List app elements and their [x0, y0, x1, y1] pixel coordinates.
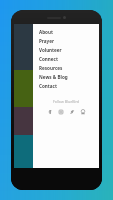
button[interactable]: Instagram	[58, 109, 64, 115]
button[interactable]: Resources	[39, 63, 99, 72]
staticText: Resources	[39, 65, 63, 71]
button[interactable]: Twitter	[69, 109, 75, 115]
button[interactable]: News & Blog	[39, 72, 99, 81]
button[interactable]: Prayer	[39, 36, 99, 45]
staticText: Contact	[39, 83, 57, 89]
button[interactable]: Contact	[39, 81, 99, 90]
staticText: Volunteer	[39, 47, 62, 53]
staticText: News & Blog	[39, 74, 68, 80]
button[interactable]: Volunteer	[39, 45, 99, 54]
button[interactable]: About	[39, 27, 99, 36]
staticText: About	[39, 29, 53, 35]
staticText: Prayer	[39, 38, 54, 44]
staticText: Follow BlueBird	[39, 99, 93, 104]
staticText: Connect	[39, 56, 58, 62]
button[interactable]: Facebook	[47, 109, 53, 115]
button[interactable]: YouTube	[80, 109, 86, 115]
button[interactable]: Connect	[39, 54, 99, 63]
